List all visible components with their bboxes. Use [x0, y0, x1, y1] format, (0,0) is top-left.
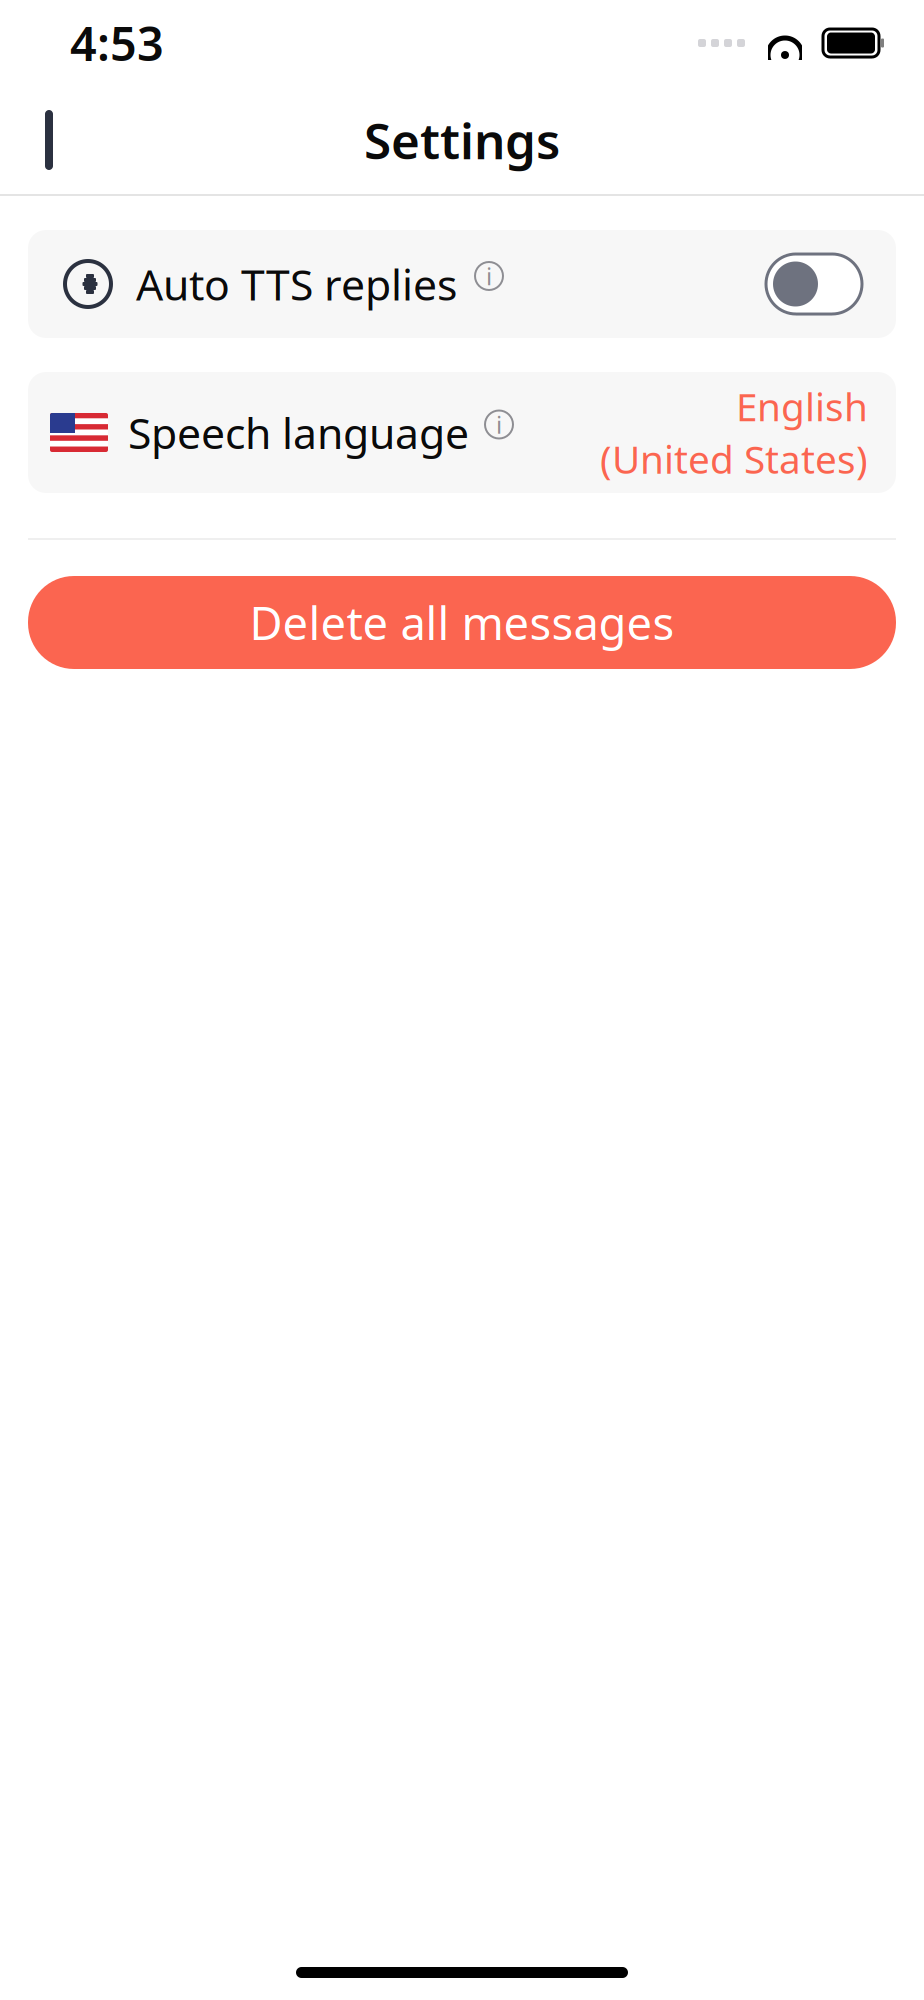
staticText: 4:53 [70, 12, 164, 74]
staticText: Delete all messages [249, 592, 674, 653]
staticText: Speech language [128, 404, 469, 461]
staticText: (United States) [600, 433, 868, 484]
button[interactable]: Auto TTS replies [28, 230, 896, 338]
staticText: Auto TTS replies [136, 256, 457, 312]
staticText: Settings [364, 107, 560, 173]
staticText: i [496, 409, 502, 440]
button[interactable]: Speech language [28, 372, 896, 493]
button[interactable]: Delete all messages [28, 576, 896, 669]
button[interactable]: Back [8, 103, 82, 177]
staticText: English [736, 381, 868, 432]
staticText: i [486, 260, 492, 292]
